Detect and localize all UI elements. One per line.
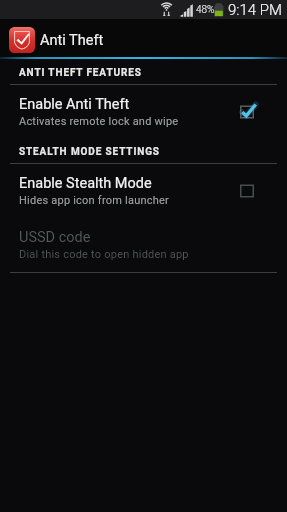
button[interactable]: Enable Stealth Mode (0, 164, 287, 218)
staticText: Anti Theft (40, 32, 104, 49)
staticText: ANTI THEFT FEATURES (19, 67, 142, 79)
staticText: Enable Stealth Mode (19, 175, 152, 192)
button[interactable]: USSD code (0, 218, 287, 272)
staticText: STEALTH MODE SETTINGS (19, 146, 160, 158)
button[interactable]: Toggle Enable Anti Theft (239, 100, 261, 124)
staticText: Enable Anti Theft (19, 96, 130, 113)
staticText: Activates remote lock and wipe (19, 115, 179, 128)
staticText: Dial this code to open hidden app (19, 248, 189, 261)
button[interactable]: Anti Theft app icon (0, 19, 287, 57)
staticText: 9:14 PM (228, 1, 282, 19)
other: Anti Theft app icon (9, 27, 35, 53)
staticText: USSD code (19, 229, 91, 246)
button[interactable]: Toggle Enable Stealth Mode (239, 179, 261, 203)
button[interactable]: Enable Anti Theft (0, 85, 287, 139)
staticText: Hides app icon from launcher (19, 194, 169, 207)
staticText: 48% (196, 4, 215, 16)
